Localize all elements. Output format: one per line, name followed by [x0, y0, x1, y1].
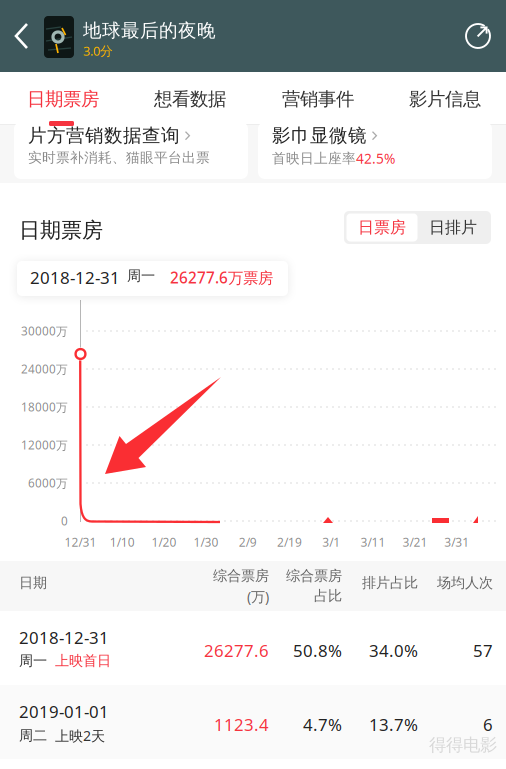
staticText: 13.7%: [369, 713, 418, 736]
staticText: 2/19: [277, 534, 302, 550]
staticText: 综合票房: [213, 567, 269, 585]
staticText: 2019-01-01: [19, 700, 109, 723]
staticText: 1/20: [152, 534, 177, 550]
button[interactable]: 2018-12-31: [0, 611, 506, 685]
button[interactable]: 日期票房: [7, 83, 119, 115]
button[interactable]: 营销事件: [262, 83, 374, 115]
staticText: 3/1: [322, 534, 340, 550]
staticText: 26277.6: [204, 639, 269, 662]
staticText: 4.7%: [303, 713, 342, 736]
button[interactable]: 影巾显微镜: [258, 122, 492, 179]
staticText: 1/10: [110, 534, 135, 550]
staticText: 3/31: [444, 534, 469, 550]
staticText: 实时票补消耗、猫眼平台出票: [28, 149, 210, 166]
staticText: 3.0分: [83, 42, 113, 59]
staticText: 12000万: [21, 437, 68, 453]
staticText: 日期票房: [27, 87, 99, 111]
staticText: 周一: [19, 652, 47, 670]
staticText: 占比: [314, 587, 342, 605]
staticText: 日排片: [429, 217, 477, 238]
button[interactable]: 影片信息: [389, 83, 501, 115]
staticText: 0: [61, 513, 68, 529]
staticText: 1123.4: [214, 713, 269, 736]
staticText: 综合票房: [286, 567, 342, 585]
staticText: 18000万: [21, 399, 68, 415]
button[interactable]: Share: [450, 0, 506, 72]
button[interactable]: 片方营销数据查询: [14, 122, 248, 179]
staticText: 34.0%: [369, 639, 418, 662]
staticText: 场均人次: [437, 574, 493, 592]
staticText: 日期票房: [19, 217, 103, 243]
staticText: 首映日上座率: [272, 150, 356, 167]
staticText: 周一: [127, 267, 155, 285]
staticText: 日期: [19, 574, 47, 592]
staticText: 12/31: [64, 534, 96, 550]
button[interactable]: 日排片: [417, 213, 488, 241]
button[interactable]: 想看数据: [134, 83, 246, 115]
button[interactable]: 2019-01-01: [0, 685, 506, 759]
staticText: 2018-12-31: [30, 266, 120, 289]
button[interactable]: Back: [0, 0, 44, 72]
staticText: 上映2天: [55, 726, 105, 745]
staticText: 2/9: [239, 534, 257, 550]
staticText: 营销事件: [282, 87, 354, 111]
staticText: 57: [473, 639, 493, 662]
staticText: 1/30: [193, 534, 218, 550]
staticText: 3/21: [402, 534, 427, 550]
staticText: 影巾显微镜: [272, 124, 367, 147]
staticText: 26277.6万票房: [170, 267, 273, 288]
staticText: 排片占比: [362, 574, 418, 592]
staticText: 42.5%: [356, 149, 395, 168]
staticText: 24000万: [21, 361, 68, 377]
staticText: 6: [483, 713, 493, 736]
staticText: 片方营销数据查询: [28, 124, 180, 147]
staticText: 得得电影: [429, 734, 497, 756]
staticText: 上映首日: [55, 652, 111, 670]
staticText: 地球最后的夜晚: [83, 19, 216, 42]
staticText: 想看数据: [154, 87, 226, 111]
staticText: 50.8%: [293, 639, 342, 662]
button[interactable]: 日票房: [346, 213, 417, 241]
staticText: 6000万: [28, 475, 68, 491]
staticText: 3/11: [361, 534, 386, 550]
staticText: 周二: [19, 727, 47, 744]
staticText: 2018-12-31: [19, 626, 109, 649]
staticText: (万): [247, 587, 269, 606]
staticText: 日票房: [358, 217, 406, 238]
staticText: 影片信息: [409, 87, 481, 111]
staticText: 30000万: [21, 323, 68, 339]
